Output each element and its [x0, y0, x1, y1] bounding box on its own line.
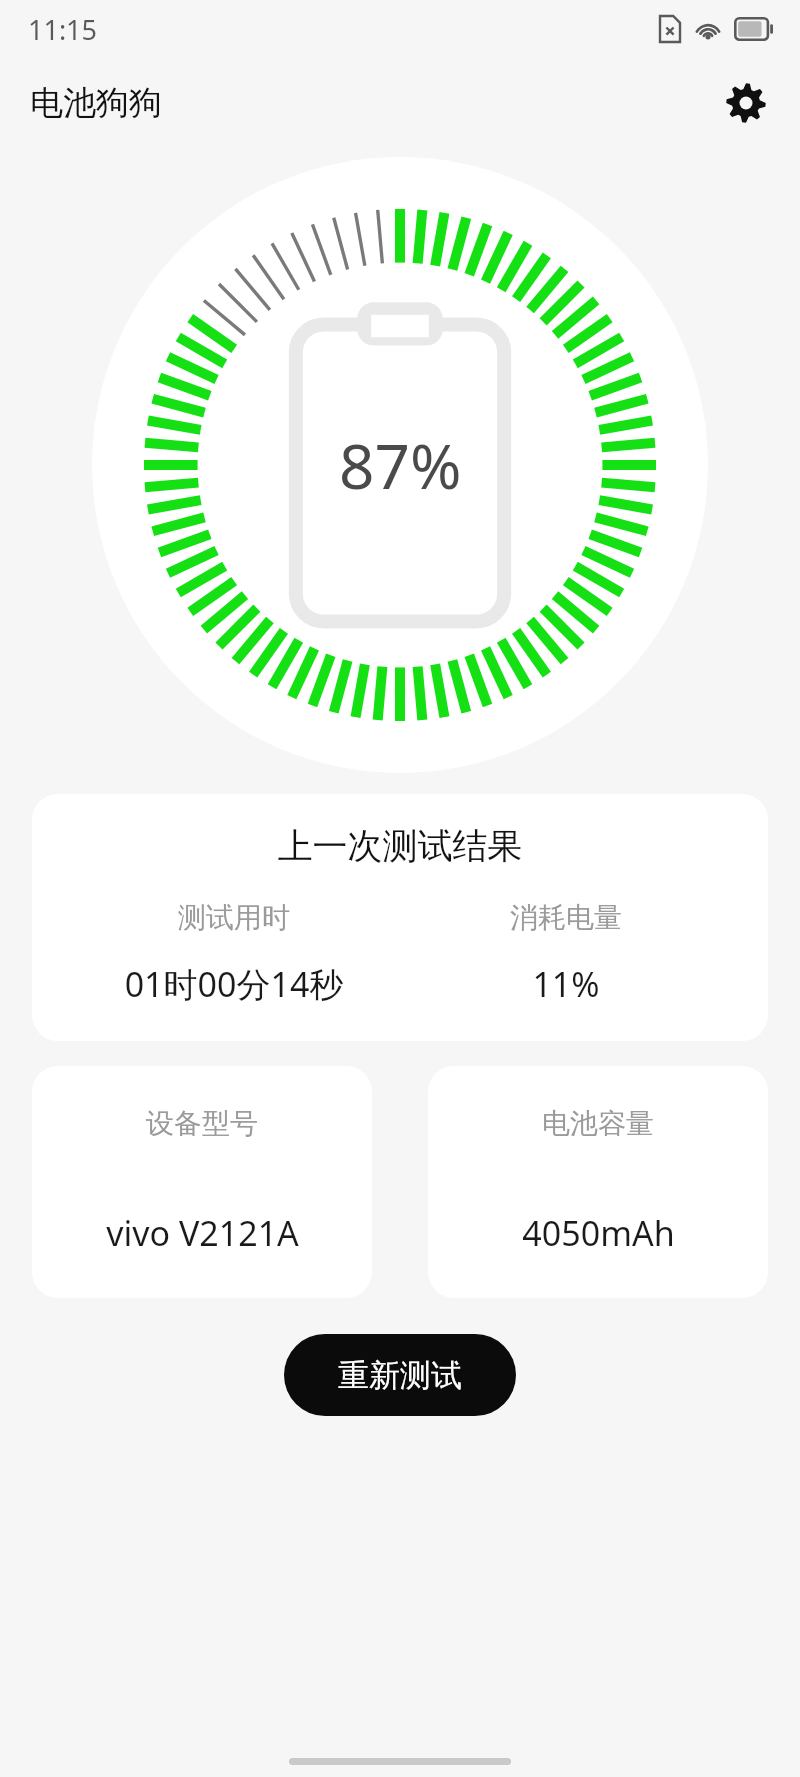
staticText: 87%: [339, 423, 462, 507]
staticText: 上一次测试结果: [32, 824, 768, 868]
button[interactable]: 重新测试: [284, 1334, 516, 1416]
button[interactable]: 上一次测试结果: [32, 794, 768, 1041]
staticText: 电池容量: [542, 1106, 654, 1141]
button[interactable]: Settings: [714, 71, 778, 135]
staticText: 设备型号: [146, 1106, 258, 1141]
staticText: 11%: [400, 961, 732, 1007]
staticText: 消耗电量: [400, 900, 732, 935]
staticText: vivo V2121A: [106, 1210, 299, 1256]
staticText: 电池狗狗: [30, 82, 162, 124]
staticText: 01时00分14秒: [68, 961, 400, 1007]
staticText: 4050mAh: [522, 1210, 675, 1256]
button[interactable]: 电池容量: [428, 1066, 768, 1298]
staticText: 11:15: [28, 11, 98, 48]
staticText: 测试用时: [68, 900, 400, 935]
staticText: 重新测试: [338, 1356, 462, 1395]
button[interactable]: 设备型号: [32, 1066, 372, 1298]
